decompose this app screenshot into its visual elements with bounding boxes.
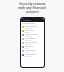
button[interactable] (21, 45, 44, 49)
staticText: Securely connect (19, 2, 46, 6)
staticText: account (26, 10, 39, 14)
button[interactable] (21, 53, 44, 57)
button[interactable] (21, 41, 44, 45)
button[interactable] (21, 49, 44, 53)
button[interactable] (21, 37, 44, 41)
button[interactable] (21, 29, 44, 33)
button[interactable]: App top bar (21, 18, 44, 22)
button[interactable] (21, 22, 44, 25)
button[interactable] (21, 33, 44, 37)
button[interactable] (21, 25, 44, 29)
staticText: with any financial (18, 6, 46, 10)
button[interactable]: App top bar (21, 18, 44, 67)
